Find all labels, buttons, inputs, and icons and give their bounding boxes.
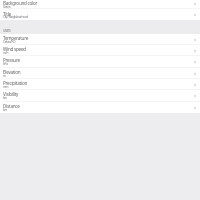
button[interactable]: Wind speed bbox=[0, 45, 200, 56]
staticText: m bbox=[3, 74, 6, 78]
staticText: Visibility bbox=[3, 91, 19, 97]
staticText: UNITS bbox=[3, 29, 11, 33]
button[interactable]: Title bbox=[0, 9, 200, 20]
staticText: Pressure bbox=[3, 57, 20, 63]
button[interactable]: Background color bbox=[0, 0, 200, 9]
staticText: km bbox=[3, 108, 7, 112]
staticText: mm bbox=[3, 85, 9, 89]
staticText: Elevation bbox=[3, 69, 21, 75]
staticText: m/h bbox=[3, 51, 8, 55]
button[interactable]: Distance bbox=[0, 102, 200, 113]
button[interactable]: Temperature bbox=[0, 34, 200, 45]
staticText: km bbox=[3, 96, 7, 100]
staticText: Precipitation bbox=[3, 80, 28, 86]
staticText: Background color bbox=[3, 0, 38, 6]
staticText: hPa bbox=[3, 62, 8, 66]
button[interactable]: Precipitation bbox=[0, 79, 200, 90]
staticText: Title bbox=[3, 11, 11, 17]
button[interactable]: Elevation bbox=[0, 68, 200, 79]
staticText: Distance bbox=[3, 103, 20, 109]
staticText: City / Neighbourhood bbox=[3, 15, 28, 19]
staticText: Celsius (°C) bbox=[3, 40, 16, 44]
button[interactable]: Pressure bbox=[0, 56, 200, 68]
staticText: Wind speed bbox=[3, 46, 26, 52]
button[interactable]: Visibility bbox=[0, 90, 200, 102]
staticText: Green bbox=[3, 5, 11, 9]
staticText: Temperature bbox=[3, 35, 29, 41]
